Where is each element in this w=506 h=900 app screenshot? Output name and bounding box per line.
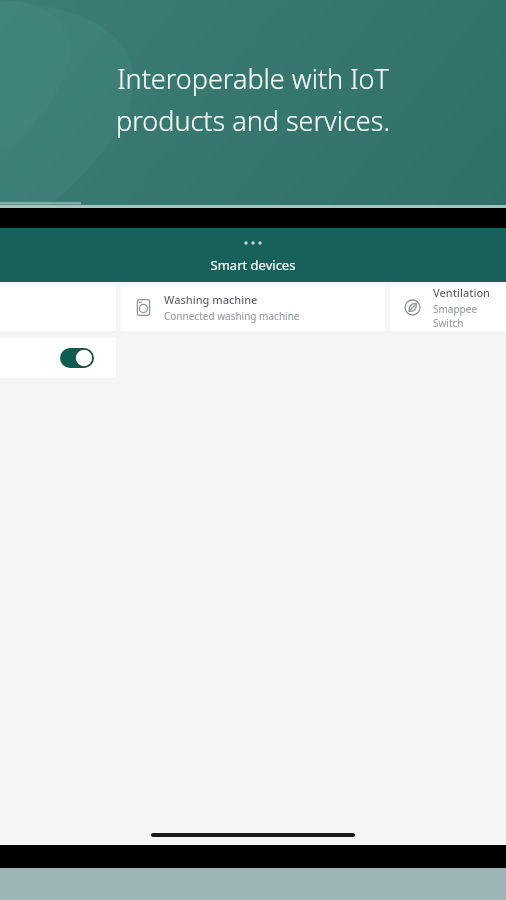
staticText: Ventilation xyxy=(433,285,491,300)
staticText: Washing machine xyxy=(164,292,258,307)
button[interactable]: Washing machine xyxy=(121,284,385,331)
staticText: Smart devices xyxy=(0,256,506,274)
button[interactable]: Ventilation xyxy=(390,284,506,331)
staticText: Smappee Switch xyxy=(433,302,506,330)
staticText: Interoperable with IoT products and serv… xyxy=(0,60,506,139)
button[interactable]: Toggle device xyxy=(0,338,116,378)
staticText: Connected washing machine xyxy=(164,309,300,323)
other: More options xyxy=(240,240,266,246)
